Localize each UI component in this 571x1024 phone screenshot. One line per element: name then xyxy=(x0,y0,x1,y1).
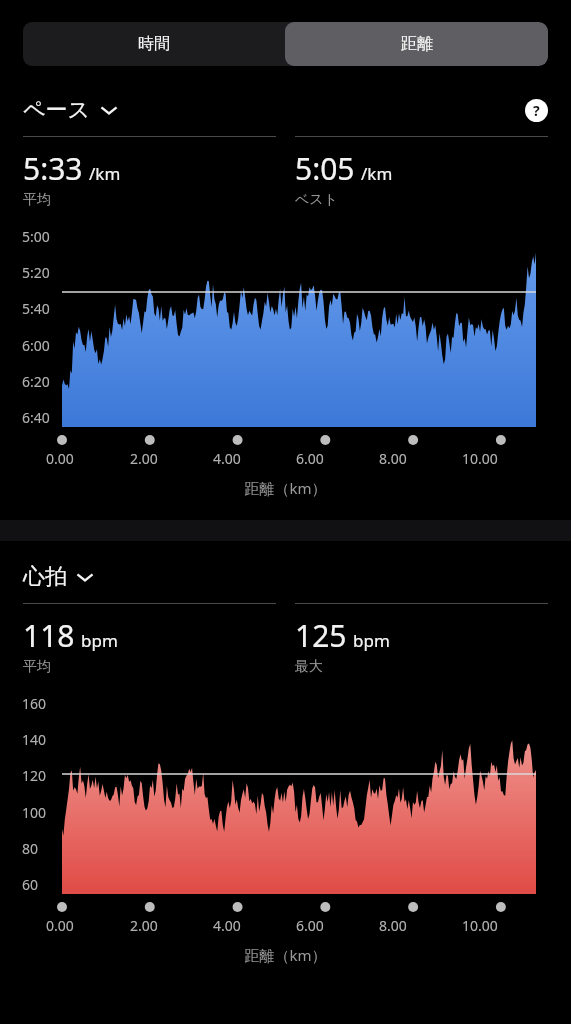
staticText: 時間 xyxy=(138,34,170,54)
staticText: 125 xyxy=(295,615,347,656)
staticText: 平均 xyxy=(23,658,51,676)
staticText: 最大 xyxy=(295,658,323,676)
button[interactable]: ペース xyxy=(23,96,118,124)
button[interactable]: 118 xyxy=(23,603,276,676)
staticText: 0.00 xyxy=(46,449,74,468)
button[interactable]: 125 xyxy=(295,603,548,676)
staticText: 100 xyxy=(22,803,47,822)
staticText: 5:33 xyxy=(23,148,83,189)
button[interactable]: 5:33 xyxy=(23,136,276,209)
staticText: 4.00 xyxy=(213,916,241,935)
staticText: 60 xyxy=(22,875,39,894)
staticText: 4.00 xyxy=(213,449,241,468)
staticText: 5:40 xyxy=(22,299,50,318)
staticText: 10.00 xyxy=(462,916,498,935)
button[interactable]: 時間 xyxy=(23,22,285,66)
staticText: bpm xyxy=(81,629,118,652)
staticText: 距離（km） xyxy=(244,945,327,965)
staticText: 160 xyxy=(22,694,47,713)
staticText: bpm xyxy=(353,629,390,652)
staticText: 5:20 xyxy=(22,263,50,282)
staticText: 5:05 xyxy=(295,148,355,189)
staticText: 80 xyxy=(22,839,39,858)
staticText: ベスト xyxy=(295,191,338,209)
staticText: 140 xyxy=(22,730,47,749)
button[interactable]: 距離 xyxy=(285,22,548,66)
staticText: 6.00 xyxy=(296,916,324,935)
staticText: 2.00 xyxy=(130,449,158,468)
staticText: /km xyxy=(361,162,393,185)
button[interactable]: Help xyxy=(523,97,549,123)
staticText: /km xyxy=(89,162,121,185)
staticText: 0.00 xyxy=(46,916,74,935)
staticText: 平均 xyxy=(23,191,51,209)
staticText: 8.00 xyxy=(379,916,407,935)
staticText: 5:00 xyxy=(22,227,50,246)
button[interactable]: 5:05 xyxy=(295,136,548,209)
button[interactable]: 心拍 xyxy=(23,563,94,591)
staticText: 6:20 xyxy=(22,372,50,391)
staticText: ペース xyxy=(23,96,91,124)
staticText: 118 xyxy=(23,615,75,656)
staticText: ? xyxy=(533,101,540,120)
staticText: 6:00 xyxy=(22,336,50,355)
staticText: 10.00 xyxy=(462,449,498,468)
staticText: 距離 xyxy=(401,34,433,54)
staticText: 距離（km） xyxy=(244,478,327,498)
staticText: 6:40 xyxy=(22,408,50,427)
staticText: 心拍 xyxy=(23,563,67,591)
staticText: 120 xyxy=(22,766,47,785)
staticText: 2.00 xyxy=(130,916,158,935)
staticText: 8.00 xyxy=(379,449,407,468)
staticText: 6.00 xyxy=(296,449,324,468)
